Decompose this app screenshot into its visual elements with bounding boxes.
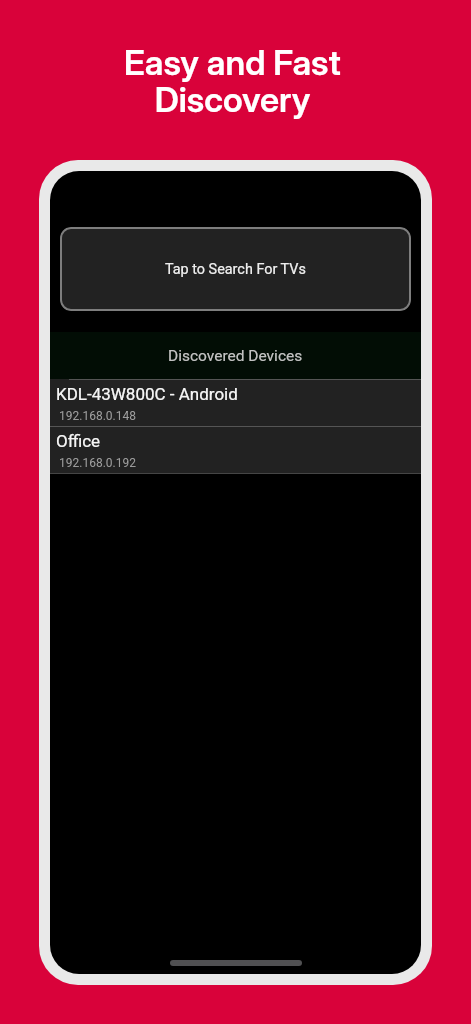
button[interactable]: Tap to Search For TVs xyxy=(60,227,411,311)
staticText: Easy and Fast Discovery xyxy=(124,42,341,120)
staticText: 192.168.0.148 xyxy=(59,409,136,423)
staticText: KDL-43W800C - Android xyxy=(56,384,238,404)
staticText: Office xyxy=(56,431,101,451)
staticText: Tap to Search For TVs xyxy=(165,261,306,278)
staticText: 192.168.0.192 xyxy=(59,456,136,470)
other: Home xyxy=(170,960,302,966)
staticText: Discovered Devices xyxy=(168,347,303,365)
button[interactable]: Office xyxy=(50,426,421,473)
button[interactable]: KDL-43W800C - Android xyxy=(50,379,421,426)
